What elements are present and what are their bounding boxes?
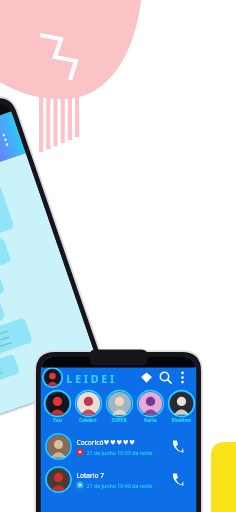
button[interactable]: LEIDEI app screenshots preview xyxy=(0,0,236,512)
